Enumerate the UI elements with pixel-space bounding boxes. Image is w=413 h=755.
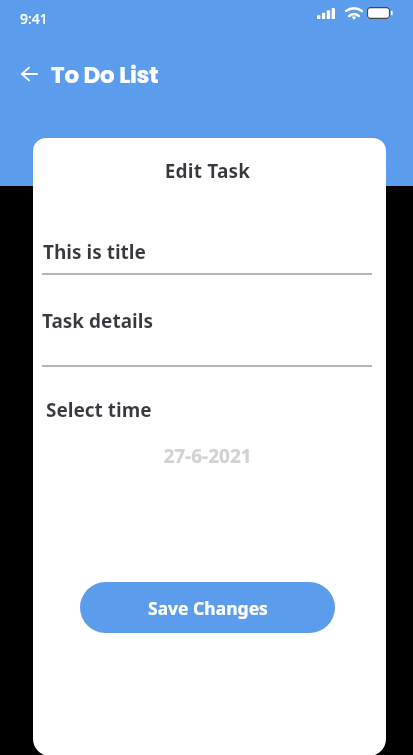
staticText: Save Changes — [148, 596, 268, 620]
staticText: Task details — [42, 308, 153, 334]
button[interactable]: This is title — [42, 230, 372, 275]
staticText: This is title — [43, 239, 146, 265]
staticText: 27-6-2021 — [33, 443, 384, 469]
staticText: To Do List — [51, 59, 159, 91]
staticText: Edit Task — [33, 158, 384, 184]
button[interactable]: Select time — [42, 390, 372, 480]
staticText: Select time — [46, 397, 152, 423]
button[interactable]: Back — [13, 58, 45, 90]
staticText: 9:41 — [20, 9, 48, 28]
button[interactable]: Task details — [42, 299, 372, 365]
button[interactable]: Save Changes — [80, 582, 335, 633]
